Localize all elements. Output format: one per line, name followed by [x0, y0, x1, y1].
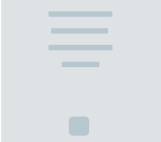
button[interactable]: Continue: [69, 116, 89, 136]
